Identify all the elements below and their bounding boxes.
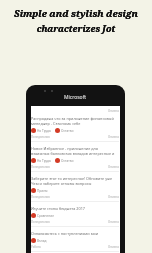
staticText: Microsoft: [64, 94, 87, 101]
staticText: Понедельник: [31, 220, 50, 224]
staticText: Simple and stylish design: [0, 7, 152, 20]
staticText: Отмена: [108, 135, 119, 139]
button[interactable]: Новое Избранное - приложение для отслежи…: [31, 146, 119, 176]
staticText: Вклад: [37, 239, 47, 243]
staticText: Simple and stylish design: [0, 7, 152, 20]
staticText: менеджер - Сэкономь себе: [31, 121, 81, 126]
staticText: Прием: [37, 189, 48, 193]
staticText: Работа: [31, 245, 41, 249]
staticText: взаимных банковских вкладов интересные и…: [31, 151, 119, 156]
button[interactable]: Изучите стопы бюджета 2017: [31, 206, 119, 231]
staticText: Сравнение: [37, 214, 54, 218]
staticText: Но Труда: [37, 159, 51, 163]
staticText: Отмена: [108, 109, 119, 113]
staticText: Понедельник: [31, 135, 50, 139]
button[interactable]: Распродажа что за приложение финансовый: [31, 116, 119, 146]
staticText: Ознакомьтесь с поступлениями мои сохране…: [31, 231, 119, 236]
staticText: Simple and stylish design: [0, 7, 152, 20]
button[interactable]: Ознакомьтесь с поступлениями мои сохране…: [31, 231, 119, 253]
staticText: Понедельник: [31, 165, 50, 169]
staticText: Отмена: [108, 165, 119, 169]
staticText: Отмена: [108, 195, 119, 199]
staticText: Остатки: [61, 159, 74, 163]
staticText: Остатки: [61, 129, 74, 133]
staticText: characterizes Jot: [0, 22, 152, 34]
staticText: characterizes Jot: [0, 22, 152, 34]
staticText: characterizes Jot: [0, 22, 152, 34]
button[interactable]: Заберите этот то интересное! Обновите уж…: [31, 176, 119, 206]
staticText: Понедельник: [31, 195, 50, 199]
staticText: Новое Избранное - приложение для отслежи…: [31, 146, 119, 151]
staticText: Отмена: [108, 220, 119, 224]
staticText: Но Труда: [37, 129, 51, 133]
staticText: Simple and stylish design: [0, 7, 152, 20]
staticText: Изучите стопы бюджета 2017: [31, 206, 86, 211]
staticText: Чем и заберите отзывы вопросы: [31, 181, 92, 186]
button[interactable]: Отмена: [31, 106, 119, 116]
staticText: characterizes Jot: [0, 22, 152, 34]
staticText: Распродажа что за приложение финансовый: [31, 116, 114, 121]
staticText: Отмена: [108, 245, 119, 249]
staticText: Заберите этот то интересное! Обновите уж…: [31, 176, 119, 181]
